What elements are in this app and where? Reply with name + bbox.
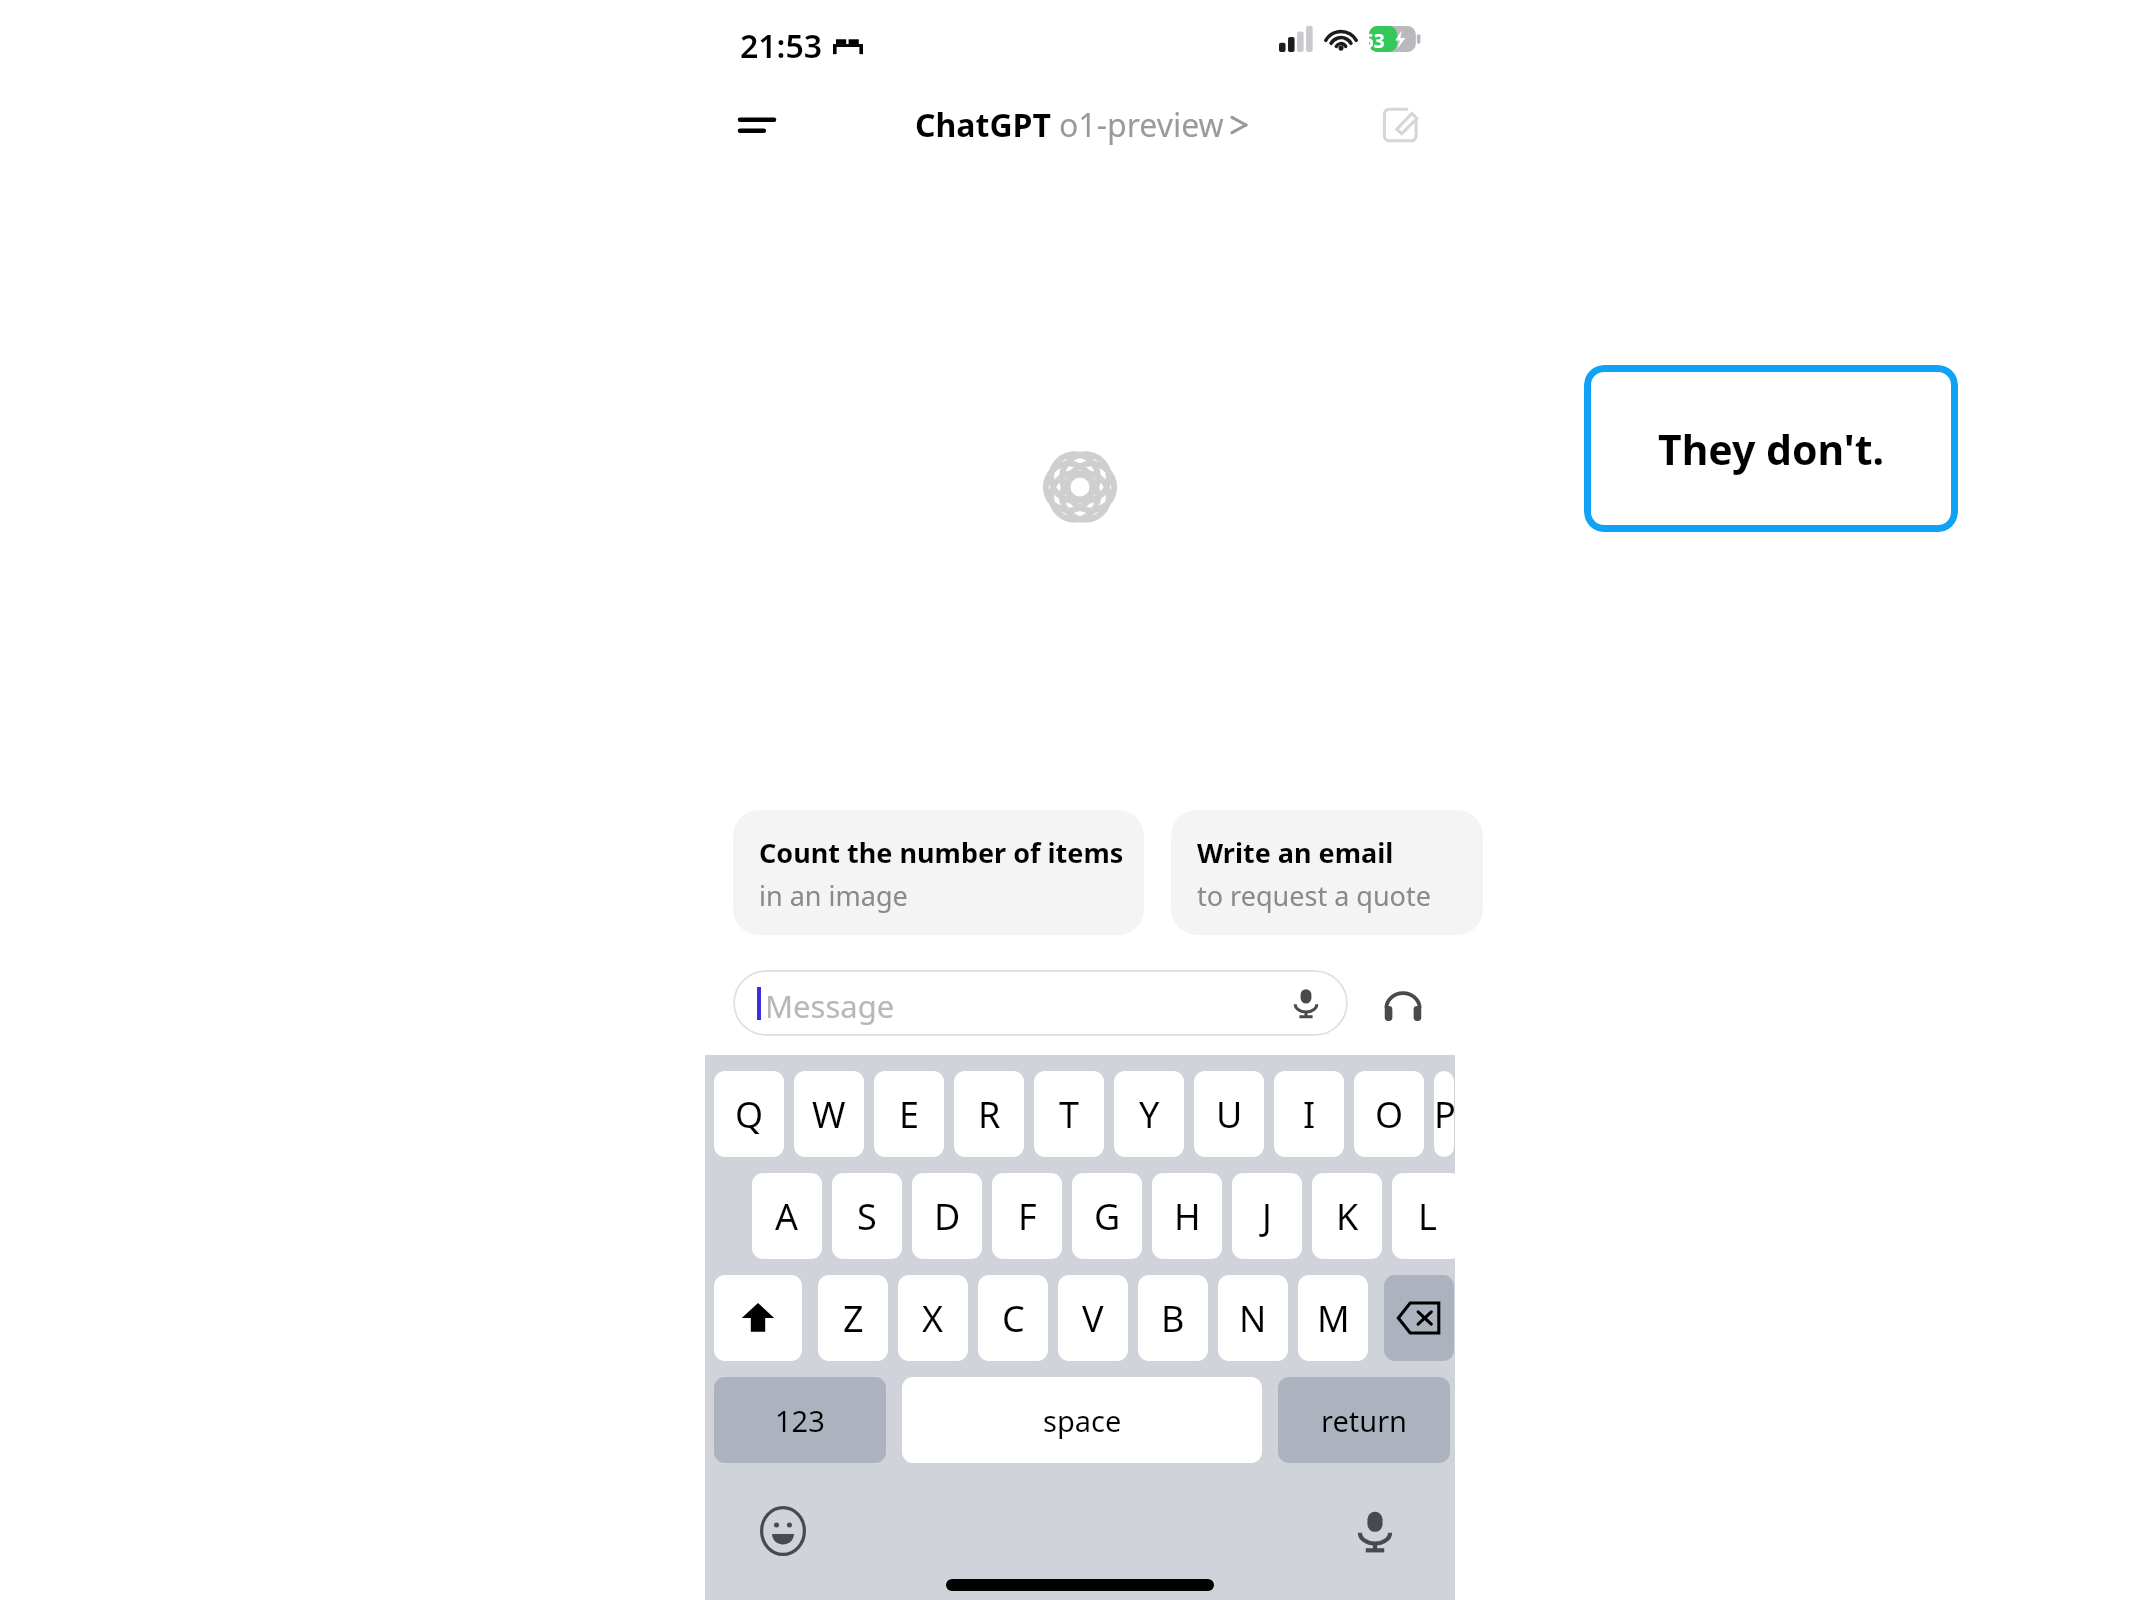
button[interactable]: K (1312, 1173, 1382, 1259)
button[interactable]: 123 (714, 1377, 886, 1463)
staticText: Count the number of items (759, 834, 1124, 871)
staticText: in an image (759, 877, 908, 914)
staticText: Z (843, 1294, 864, 1343)
button[interactable]: Dictation (1347, 1503, 1403, 1559)
button[interactable]: F (992, 1173, 1062, 1259)
staticText: return (1321, 1401, 1408, 1440)
staticText: o1-preview (1059, 103, 1224, 147)
staticText: N (1239, 1294, 1267, 1343)
button[interactable]: S (832, 1173, 902, 1259)
button[interactable]: Y (1114, 1071, 1184, 1157)
button[interactable]: They don't. (1584, 365, 1958, 532)
button[interactable]: P (1434, 1071, 1454, 1157)
button[interactable]: Write an email (1171, 810, 1483, 935)
button[interactable]: R (954, 1071, 1024, 1157)
staticText: Write an email (1197, 834, 1394, 871)
button[interactable]: Menu (725, 93, 789, 157)
staticText: L (1418, 1192, 1437, 1241)
staticText: P (1434, 1090, 1454, 1139)
staticText: A (775, 1192, 799, 1241)
button[interactable]: I (1274, 1071, 1344, 1157)
staticText: They don't. (1658, 421, 1885, 477)
button[interactable]: M (1298, 1275, 1368, 1361)
staticText: Message (765, 985, 895, 1027)
button[interactable]: A (752, 1173, 822, 1259)
staticText: X (922, 1294, 944, 1343)
button[interactable]: ChatGPT (915, 103, 1246, 147)
button[interactable]: E (874, 1071, 944, 1157)
staticText: C (1002, 1294, 1025, 1343)
button[interactable]: N (1218, 1275, 1288, 1361)
button[interactable]: D (912, 1173, 982, 1259)
staticText: ChatGPT (915, 103, 1051, 147)
button[interactable]: C (978, 1275, 1048, 1361)
staticText: to request a quote from (1197, 877, 1469, 914)
staticText: I (1303, 1090, 1316, 1139)
staticText: J (1262, 1192, 1272, 1241)
staticText: V (1082, 1294, 1104, 1343)
button[interactable]: U (1194, 1071, 1264, 1157)
button[interactable]: Backspace (1384, 1275, 1454, 1361)
staticText: 53 (1363, 28, 1385, 54)
button[interactable]: B (1138, 1275, 1208, 1361)
staticText: U (1216, 1090, 1243, 1139)
button[interactable]: Message (733, 970, 1348, 1036)
button[interactable]: Voice mode (1377, 980, 1429, 1032)
button[interactable]: G (1072, 1173, 1142, 1259)
staticText: E (899, 1090, 920, 1139)
button[interactable]: L (1392, 1173, 1462, 1259)
button[interactable]: Z (818, 1275, 888, 1361)
staticText: R (978, 1090, 1001, 1139)
staticText: D (934, 1192, 961, 1241)
button[interactable]: Emoji (755, 1503, 811, 1559)
staticText: Q (735, 1090, 764, 1139)
staticText: T (1059, 1090, 1080, 1139)
button[interactable]: New chat (1369, 93, 1433, 157)
staticText: F (1018, 1192, 1037, 1241)
button[interactable]: Q (714, 1071, 784, 1157)
button[interactable]: return (1278, 1377, 1450, 1463)
staticText: B (1161, 1294, 1185, 1343)
staticText: M (1317, 1294, 1350, 1343)
button[interactable]: Count the number of items (733, 810, 1144, 935)
staticText: W (812, 1090, 846, 1139)
staticText: K (1336, 1192, 1359, 1241)
button[interactable]: V (1058, 1275, 1128, 1361)
staticText: S (857, 1192, 877, 1241)
staticText: 21:53 (740, 24, 823, 68)
button[interactable]: W (794, 1071, 864, 1157)
button[interactable]: J (1232, 1173, 1302, 1259)
button[interactable]: Shift (714, 1275, 802, 1361)
button[interactable]: space (902, 1377, 1262, 1463)
staticText: Y (1139, 1090, 1160, 1139)
button[interactable]: Voice input (1282, 979, 1330, 1027)
button[interactable]: O (1354, 1071, 1424, 1157)
staticText: O (1375, 1090, 1404, 1139)
button[interactable]: H (1152, 1173, 1222, 1259)
button[interactable]: X (898, 1275, 968, 1361)
staticText: space (1043, 1401, 1122, 1440)
staticText: G (1094, 1192, 1121, 1241)
staticText: 123 (775, 1401, 825, 1440)
staticText: H (1174, 1192, 1201, 1241)
button[interactable]: T (1034, 1071, 1104, 1157)
